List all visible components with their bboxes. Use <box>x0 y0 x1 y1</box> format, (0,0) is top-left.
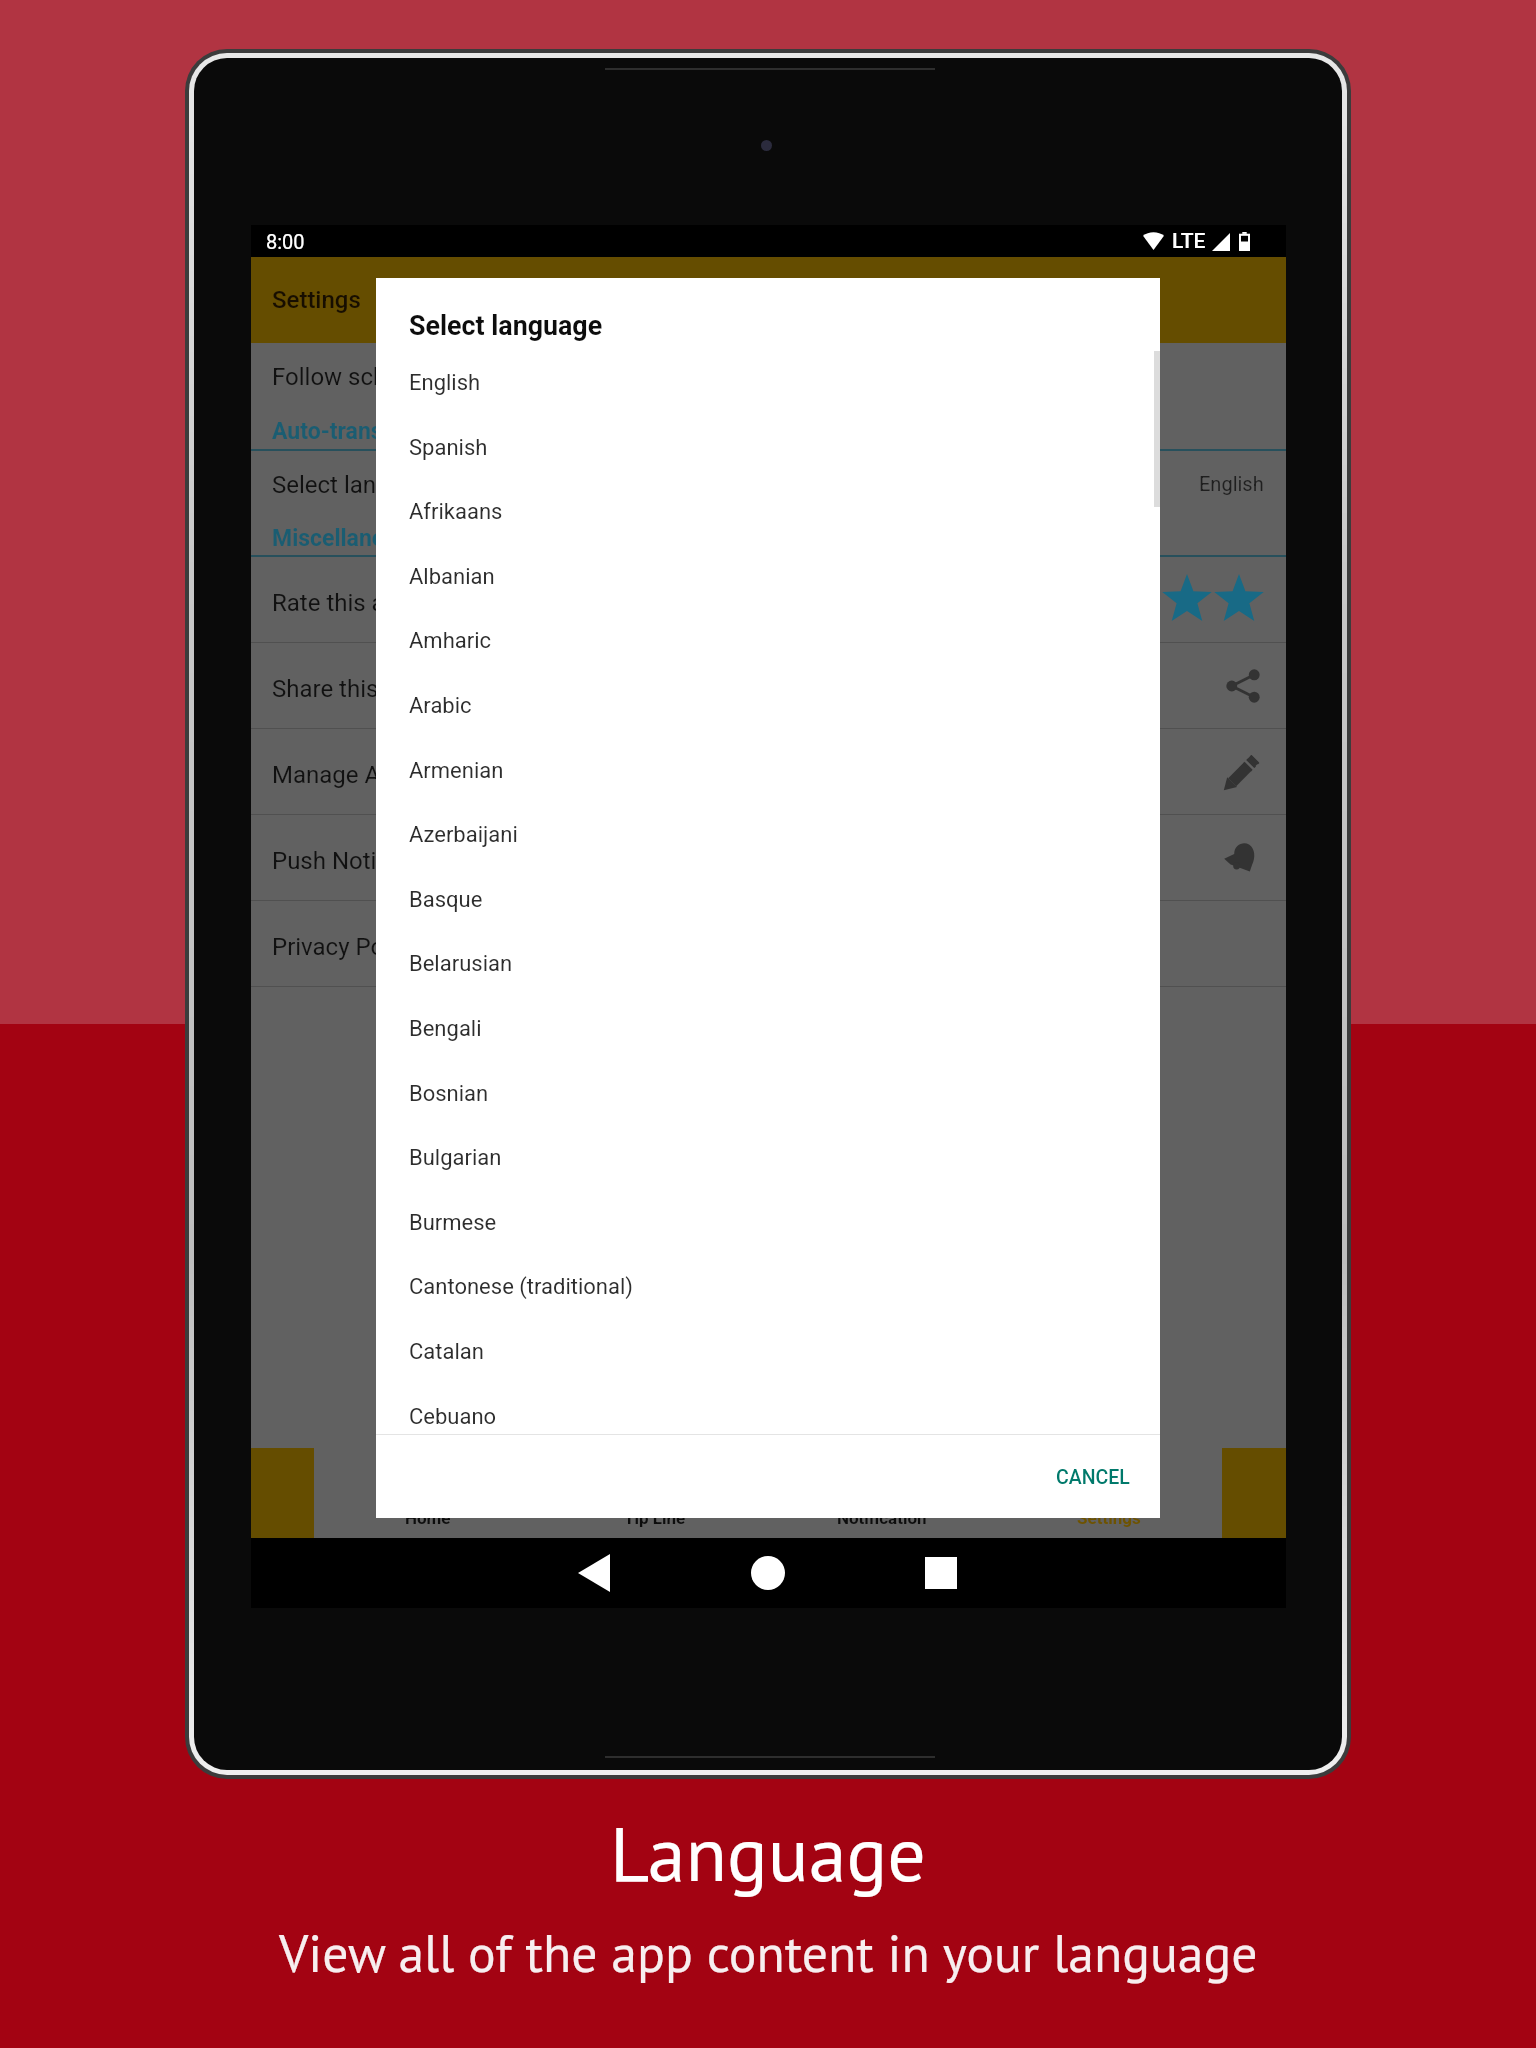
button[interactable]: Basque <box>376 868 1160 932</box>
button[interactable]: Bulgarian <box>376 1126 1160 1190</box>
button[interactable]: Catalan <box>376 1320 1160 1384</box>
button[interactable]: Azerbaijani <box>376 803 1160 867</box>
staticText: Notification <box>837 1508 927 1528</box>
button[interactable]: Share this app <box>251 643 1286 729</box>
staticText: Belarusian <box>409 951 513 977</box>
staticText: Afrikaans <box>409 499 503 525</box>
other: Edit <box>1222 752 1262 792</box>
staticText: English <box>1199 472 1264 495</box>
staticText: Amharic <box>409 628 492 654</box>
staticText: LTE <box>1172 229 1206 254</box>
button[interactable]: Cebuano <box>376 1385 1160 1449</box>
button[interactable]: Tip Line <box>541 1448 768 1538</box>
staticText: Burmese <box>409 1210 497 1236</box>
staticText: Follow school <box>272 363 420 391</box>
button[interactable]: Spanish <box>376 416 1160 480</box>
staticText: Select language <box>409 310 603 341</box>
staticText: Bosnian <box>409 1081 489 1107</box>
staticText: Push Notification <box>272 847 456 875</box>
staticText: Bengali <box>409 1016 482 1042</box>
button[interactable]: English <box>376 351 1160 415</box>
button[interactable]: Manage Account <box>251 729 1286 815</box>
staticText: Albanian <box>409 564 495 590</box>
staticText: Language <box>610 1804 926 1902</box>
staticText: Catalan <box>409 1339 484 1365</box>
staticText: CANCEL <box>1056 1466 1130 1489</box>
button[interactable]: Burmese <box>376 1191 1160 1255</box>
button[interactable]: Amharic <box>376 609 1160 673</box>
staticText: Miscellaneous <box>272 525 422 552</box>
staticText: Azerbaijani <box>409 822 518 848</box>
staticText: View all of the app content in your lang… <box>279 1919 1258 1986</box>
button[interactable]: Albanian <box>376 545 1160 609</box>
button[interactable]: Bosnian <box>376 1062 1160 1126</box>
button[interactable]: Rate this app <box>251 557 1286 643</box>
button[interactable]: Settings <box>995 1448 1222 1538</box>
staticText: Cantonese (traditional) <box>409 1274 633 1300</box>
staticText: Bulgarian <box>409 1145 502 1171</box>
staticText: Spanish <box>409 435 488 461</box>
button[interactable]: Belarusian <box>376 932 1160 996</box>
staticText: Settings <box>272 286 361 314</box>
button[interactable]: Notification <box>768 1448 995 1538</box>
button[interactable]: Arabic <box>376 674 1160 738</box>
staticText: Arabic <box>409 693 472 719</box>
staticText: Armenian <box>409 758 504 784</box>
button[interactable]: CANCEL <box>1039 1444 1147 1510</box>
staticText: 8:00 <box>266 230 305 253</box>
staticText: Manage Account <box>272 761 454 789</box>
button[interactable]: Armenian <box>376 739 1160 803</box>
button[interactable]: Follow school <box>251 343 1286 405</box>
staticText: Home <box>405 1508 451 1528</box>
staticText: Settings <box>1077 1508 1141 1528</box>
other: Notifications <box>1221 838 1261 878</box>
other: Share <box>1226 669 1260 703</box>
button[interactable]: Bengali <box>376 997 1160 1061</box>
button[interactable]: Afrikaans <box>376 480 1160 544</box>
staticText: Privacy Policy <box>272 933 420 961</box>
staticText: Share this app <box>272 675 425 703</box>
button[interactable]: Home <box>314 1448 541 1538</box>
button[interactable]: Push Notification <box>251 815 1286 901</box>
staticText: Cebuano <box>409 1404 497 1430</box>
staticText: Auto-translation <box>272 418 441 445</box>
staticText: Tip Line <box>624 1508 686 1528</box>
button[interactable]: Select language <box>251 451 1286 513</box>
staticText: English <box>409 370 481 396</box>
button[interactable]: Cantonese (traditional) <box>376 1255 1160 1319</box>
staticText: Rate this app <box>272 589 412 617</box>
button[interactable]: Privacy Policy <box>251 901 1286 987</box>
staticText: Select language <box>272 471 443 499</box>
staticText: Basque <box>409 887 483 913</box>
